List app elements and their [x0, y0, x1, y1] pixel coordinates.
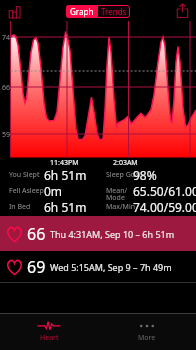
staticText: 65.50/61.00 — [133, 183, 196, 199]
staticText: Graph — [70, 6, 94, 17]
staticText: 59 — [2, 130, 11, 140]
button[interactable]: 69 — [0, 251, 196, 282]
staticText: 0m — [44, 183, 63, 199]
button[interactable]: 66 — [0, 216, 196, 251]
staticText: 74 — [2, 33, 11, 43]
button[interactable]: More — [98, 314, 196, 350]
staticText: In Bed — [9, 202, 31, 212]
staticText: 11:43PM — [50, 158, 79, 168]
staticText: 66 — [2, 83, 11, 93]
staticText: Wed 5:15AM, Sep 9 – 7h 49m — [50, 261, 172, 273]
staticText: More — [138, 333, 156, 343]
staticText: 2:03AM — [113, 158, 138, 168]
staticText: 98% — [133, 167, 157, 183]
staticText: Sleep Goal — [106, 170, 141, 180]
staticText: Max/Min — [106, 202, 136, 212]
button[interactable]: Trends — [98, 5, 130, 18]
button[interactable]: Share — [176, 3, 189, 18]
staticText: 74.00/59.00 — [133, 199, 196, 215]
staticText: You Slept — [9, 170, 40, 180]
staticText: 6h 51m — [44, 199, 87, 215]
staticText: Trends — [101, 6, 127, 17]
staticText: Mean/ Mode — [106, 186, 128, 202]
button[interactable]: Graph — [66, 5, 98, 18]
staticText: 6h 51m — [44, 167, 87, 183]
staticText: Thu 4:31AM, Sep 10 – 6h 51m — [50, 228, 175, 240]
button[interactable]: Graph — [5, 4, 21, 18]
staticText: 66 — [27, 223, 46, 245]
staticText: Heart — [40, 333, 59, 343]
button[interactable]: Heart — [0, 314, 98, 350]
staticText: 69 — [27, 256, 46, 278]
staticText: Fell Asleep — [9, 186, 44, 196]
